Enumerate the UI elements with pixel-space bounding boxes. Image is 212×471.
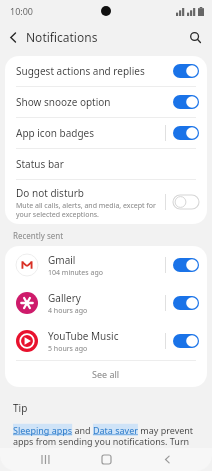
staticText: Do not disturb — [16, 186, 84, 200]
staticText: App icon badges — [16, 126, 165, 140]
button[interactable]: Do not disturb — [5, 180, 207, 224]
button[interactable]: Back — [0, 24, 26, 50]
staticText: Show snooze option — [16, 95, 173, 109]
button[interactable]: Gallery — [5, 284, 207, 322]
staticText: 4 hours ago — [48, 306, 88, 316]
button[interactable]: Status bar — [5, 149, 207, 179]
button[interactable]: Toggle on — [173, 296, 199, 310]
staticText: Notifications — [26, 29, 98, 45]
button[interactable]: Back — [152, 448, 182, 471]
button[interactable]: Recents — [31, 448, 61, 471]
button[interactable]: Toggle on — [173, 258, 199, 272]
staticText: YouTube Music — [48, 329, 119, 343]
button[interactable]: Show snooze option — [5, 87, 207, 117]
button[interactable]: Suggest actions and replies — [5, 56, 207, 86]
staticText: Mute all calls, alerts, and media, excep… — [16, 201, 156, 219]
staticText: 104 minutes ago — [48, 268, 103, 278]
button[interactable]: Toggle on — [173, 95, 199, 109]
button[interactable]: Toggle on — [173, 64, 199, 78]
staticText: See all — [92, 368, 120, 380]
staticText: Tip — [13, 401, 28, 415]
button[interactable]: Toggle on — [173, 126, 199, 140]
button[interactable]: YouTube Music — [5, 322, 207, 360]
staticText: Sleeping apps and Data saver may prevent… — [13, 424, 202, 448]
button[interactable]: Toggle on — [173, 334, 199, 348]
staticText: Gallery — [48, 291, 81, 305]
button[interactable]: App icon badges — [5, 118, 207, 148]
staticText: Recently sent — [13, 230, 64, 241]
staticText: Suggest actions and replies — [16, 64, 173, 78]
staticText: Gmail — [48, 253, 76, 267]
button[interactable]: See all — [5, 361, 207, 387]
staticText: 10:00 — [10, 5, 34, 17]
button[interactable]: Toggle off — [173, 195, 199, 209]
staticText: 5 hours ago — [48, 344, 88, 354]
button[interactable]: Search — [182, 24, 208, 50]
button[interactable]: Home — [91, 448, 121, 471]
staticText: Status bar — [16, 157, 64, 171]
button[interactable]: Gmail — [5, 246, 207, 284]
